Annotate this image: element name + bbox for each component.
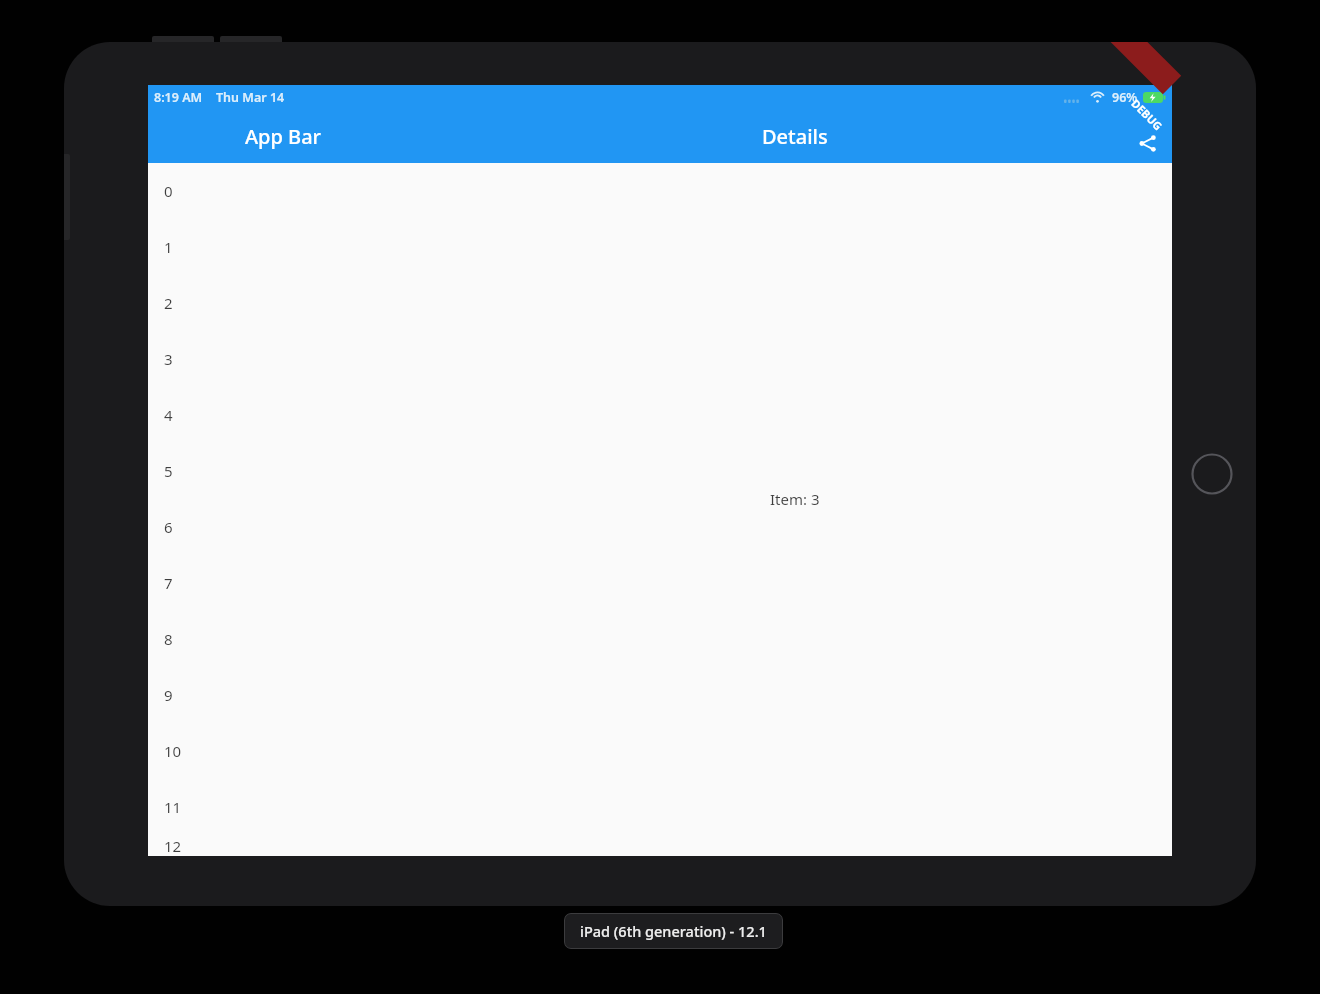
button[interactable]: 1: [148, 219, 418, 275]
button[interactable]: 8: [148, 611, 418, 667]
staticText: 8: [164, 629, 173, 649]
staticText: 4: [164, 405, 173, 425]
staticText: 8:19 AM: [154, 89, 203, 106]
staticText: 9: [164, 685, 173, 705]
button[interactable]: 4: [148, 387, 418, 443]
staticText: 5: [164, 461, 173, 481]
button[interactable]: 10: [148, 723, 418, 779]
staticText: 6: [164, 517, 173, 537]
staticText: 7: [164, 573, 173, 593]
staticText: 1: [164, 237, 173, 257]
staticText: App Bar: [245, 123, 322, 150]
staticText: 10: [164, 741, 182, 761]
button[interactable]: 7: [148, 555, 418, 611]
button[interactable]: 11: [148, 779, 418, 835]
staticText: Details: [762, 123, 828, 150]
staticText: 11: [164, 797, 182, 817]
staticText: 96%: [1112, 89, 1138, 106]
button[interactable]: iPad (6th generation) - 12.1: [564, 913, 783, 949]
button[interactable]: 12: [148, 835, 418, 856]
button[interactable]: 3: [148, 331, 418, 387]
button[interactable]: 5: [148, 443, 418, 499]
button[interactable]: 6: [148, 499, 418, 555]
staticText: 12: [164, 836, 182, 856]
staticText: 0: [164, 181, 173, 201]
button[interactable]: 9: [148, 667, 418, 723]
button[interactable]: 2: [148, 275, 418, 331]
staticText: 3: [164, 349, 173, 369]
staticText: 2: [164, 293, 173, 313]
button[interactable]: Share: [1124, 120, 1170, 166]
staticText: Thu Mar 14: [216, 89, 285, 106]
staticText: DEBUG: [1128, 96, 1166, 133]
staticText: Item: 3: [770, 489, 820, 509]
button[interactable]: Home: [1191, 453, 1233, 495]
staticText: iPad (6th generation) - 12.1: [580, 921, 767, 941]
button[interactable]: 0: [148, 163, 418, 219]
